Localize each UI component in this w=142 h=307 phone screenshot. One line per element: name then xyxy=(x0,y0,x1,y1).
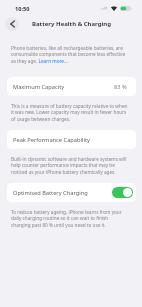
staticText: This is a measure of battery capacity re… xyxy=(11,103,128,123)
button[interactable]: Peak Performance Capability xyxy=(7,130,136,149)
staticText: 83 % xyxy=(114,83,127,91)
button[interactable]: Maximum Capacity xyxy=(7,77,136,96)
staticText: Peak Performance Capability xyxy=(13,136,90,144)
button[interactable]: Optimised Battery Charging toggle xyxy=(112,187,133,198)
staticText: Maximum Capacity xyxy=(13,83,65,91)
staticText: Phone batteries, like all rechargeable b… xyxy=(11,45,128,65)
staticText: To reduce battery ageing, iPhone learns … xyxy=(11,209,128,229)
staticText: Built-in dynamic software and hardware s… xyxy=(11,156,128,176)
button[interactable]: Back xyxy=(5,17,19,31)
button[interactable]: Optimised Battery Charging xyxy=(7,183,136,202)
staticText: Optimised Battery Charging xyxy=(13,189,88,197)
staticText: Battery Health & Charging xyxy=(32,20,111,28)
staticText: 10:50 xyxy=(15,5,30,13)
